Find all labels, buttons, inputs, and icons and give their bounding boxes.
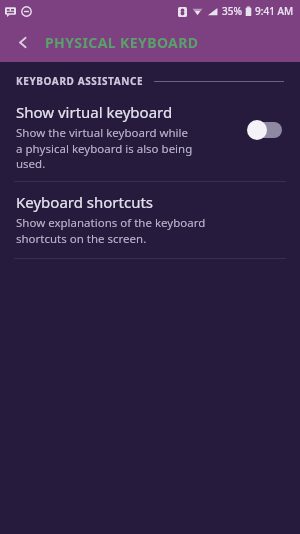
staticText: Show the virtual keyboard while a physic… xyxy=(16,125,193,171)
staticText: Keyboard shortcuts xyxy=(16,192,154,212)
staticText: KEYBOARD ASSISTANCE xyxy=(16,74,144,88)
button[interactable]: Show virtual keyboard xyxy=(0,98,300,181)
staticText: PHYSICAL KEYBOARD xyxy=(45,33,199,52)
staticText: 9:41 AM xyxy=(255,4,294,18)
button[interactable]: Keyboard shortcuts xyxy=(0,182,300,258)
staticText: 35% xyxy=(222,4,242,18)
button[interactable]: Show virtual keyboard toggle xyxy=(246,118,286,142)
staticText: Show virtual keyboard xyxy=(16,102,173,122)
button[interactable]: Back xyxy=(6,25,40,59)
staticText: Show explanations of the keyboard shortc… xyxy=(16,215,206,246)
